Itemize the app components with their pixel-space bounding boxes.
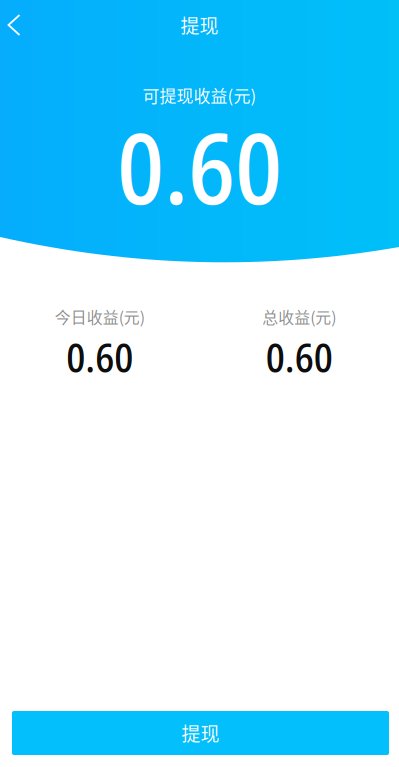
staticText: 提现 xyxy=(180,11,218,39)
staticText: 总收益(元) xyxy=(262,305,336,328)
button[interactable]: 提现 xyxy=(12,711,389,755)
staticText: 0.60 xyxy=(266,330,333,384)
staticText: 今日收益(元) xyxy=(55,305,145,328)
staticText: 0.60 xyxy=(66,330,133,384)
staticText: 0.60 xyxy=(117,99,282,233)
staticText: 可提现收益(元) xyxy=(142,83,256,107)
button[interactable]: Back xyxy=(0,3,34,47)
staticText: 提现 xyxy=(181,719,219,747)
